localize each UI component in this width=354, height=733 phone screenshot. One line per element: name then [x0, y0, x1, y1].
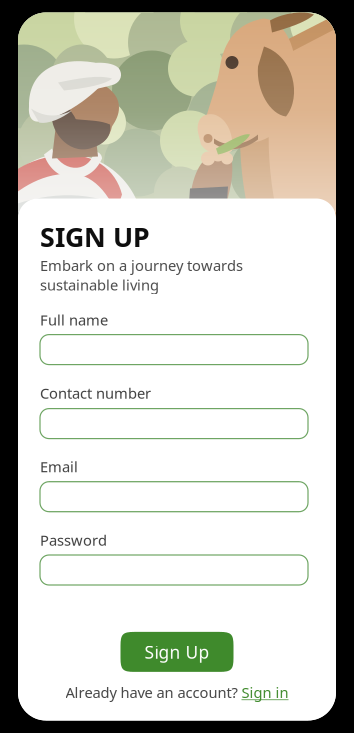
- button[interactable]: Contact number: [40, 409, 308, 439]
- button[interactable]: Sign Up: [120, 632, 233, 672]
- staticText: Password: [40, 530, 107, 550]
- staticText: Sign in: [241, 682, 288, 702]
- staticText: Already have an account?: [65, 682, 237, 702]
- staticText: SIGN UP: [40, 219, 150, 254]
- staticText: Email: [40, 457, 78, 476]
- staticText: Sign Up: [144, 640, 209, 663]
- button[interactable]: Sign in: [241, 682, 288, 702]
- button[interactable]: Email: [40, 482, 308, 512]
- button[interactable]: Password: [40, 555, 308, 585]
- button[interactable]: Full name: [40, 335, 308, 365]
- staticText: Embark on a journey towards sustainable …: [40, 255, 243, 294]
- staticText: Contact number: [40, 383, 151, 403]
- staticText: Full name: [40, 310, 108, 330]
